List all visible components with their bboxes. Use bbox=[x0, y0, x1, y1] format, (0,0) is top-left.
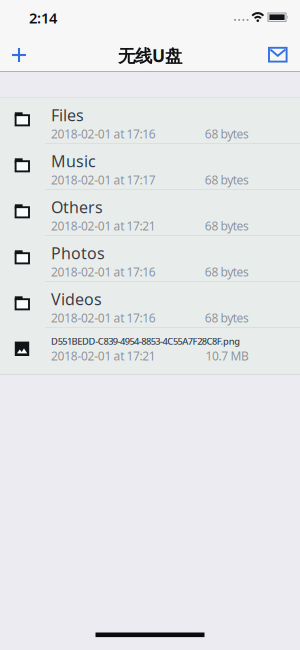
staticText: 无线U盘 bbox=[118, 44, 182, 67]
staticText: 2018-02-01 at 17:21 bbox=[51, 348, 156, 364]
staticText: 2018-02-01 at 17:21 bbox=[51, 218, 156, 234]
staticText: 68 bytes bbox=[205, 264, 249, 280]
staticText: 68 bytes bbox=[205, 218, 249, 234]
staticText: 10.7 MB bbox=[205, 348, 249, 364]
staticText: 2018-02-01 at 17:16 bbox=[51, 310, 156, 326]
staticText: 2018-02-01 at 17:17 bbox=[51, 172, 156, 188]
staticText: Videos bbox=[51, 288, 102, 310]
staticText: Photos bbox=[51, 242, 105, 264]
button[interactable]: D551BEDD-C839-4954-8853-4C55A7F28C8F.png bbox=[0, 328, 300, 374]
staticText: Music bbox=[51, 150, 96, 172]
staticText: 68 bytes bbox=[205, 126, 249, 142]
staticText: 2018-02-01 at 17:16 bbox=[51, 126, 156, 142]
button[interactable]: Music bbox=[0, 144, 300, 190]
button[interactable]: Add bbox=[0, 30, 44, 71]
button[interactable]: Photos bbox=[0, 236, 300, 282]
staticText: 68 bytes bbox=[205, 172, 249, 188]
staticText: 68 bytes bbox=[205, 310, 249, 326]
staticText: D551BEDD-C839-4954-8853-4C55A7F28C8F.png bbox=[51, 335, 240, 347]
button[interactable]: Others bbox=[0, 190, 300, 236]
button[interactable]: Videos bbox=[0, 282, 300, 328]
staticText: 2:14 bbox=[29, 8, 57, 27]
button[interactable]: Mail bbox=[256, 30, 300, 71]
staticText: 2018-02-01 at 17:16 bbox=[51, 264, 156, 280]
staticText: Others bbox=[51, 196, 103, 218]
staticText: Files bbox=[51, 104, 84, 126]
button[interactable]: Files bbox=[0, 98, 300, 144]
